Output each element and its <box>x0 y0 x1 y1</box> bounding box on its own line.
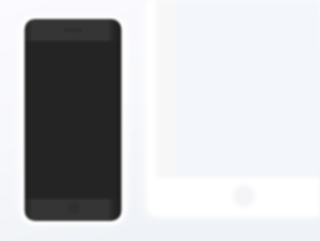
button[interactable]: Black smartphone <box>25 19 122 221</box>
button[interactable]: White tablet <box>147 0 320 217</box>
